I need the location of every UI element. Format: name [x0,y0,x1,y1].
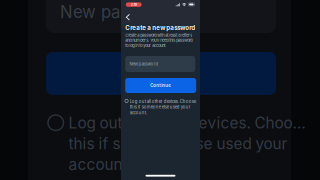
staticText: this if someone else used your [130,104,191,109]
staticText: and numbers. You’ll need this password [125,38,192,43]
staticText: Create a new password [125,24,195,31]
staticText: account. [130,110,147,115]
staticText: Log out all other devices. Choose [68,114,308,132]
button[interactable]: Continue [125,78,196,93]
staticText: New password [60,2,177,22]
staticText: New password [129,61,158,66]
button[interactable]: Log out all other devices. Choose [121,99,196,115]
staticText: account. [68,155,131,173]
staticText: Create a password with at least 8 letter… [125,33,192,37]
staticText: Log out all other devices. Choose [130,99,196,104]
staticText: this if someone else used your [68,135,287,153]
staticText: 2:19 [131,3,137,7]
staticText: to log in to your account. [125,43,166,48]
staticText: Continue [150,83,171,88]
button[interactable]: Back [121,11,136,23]
